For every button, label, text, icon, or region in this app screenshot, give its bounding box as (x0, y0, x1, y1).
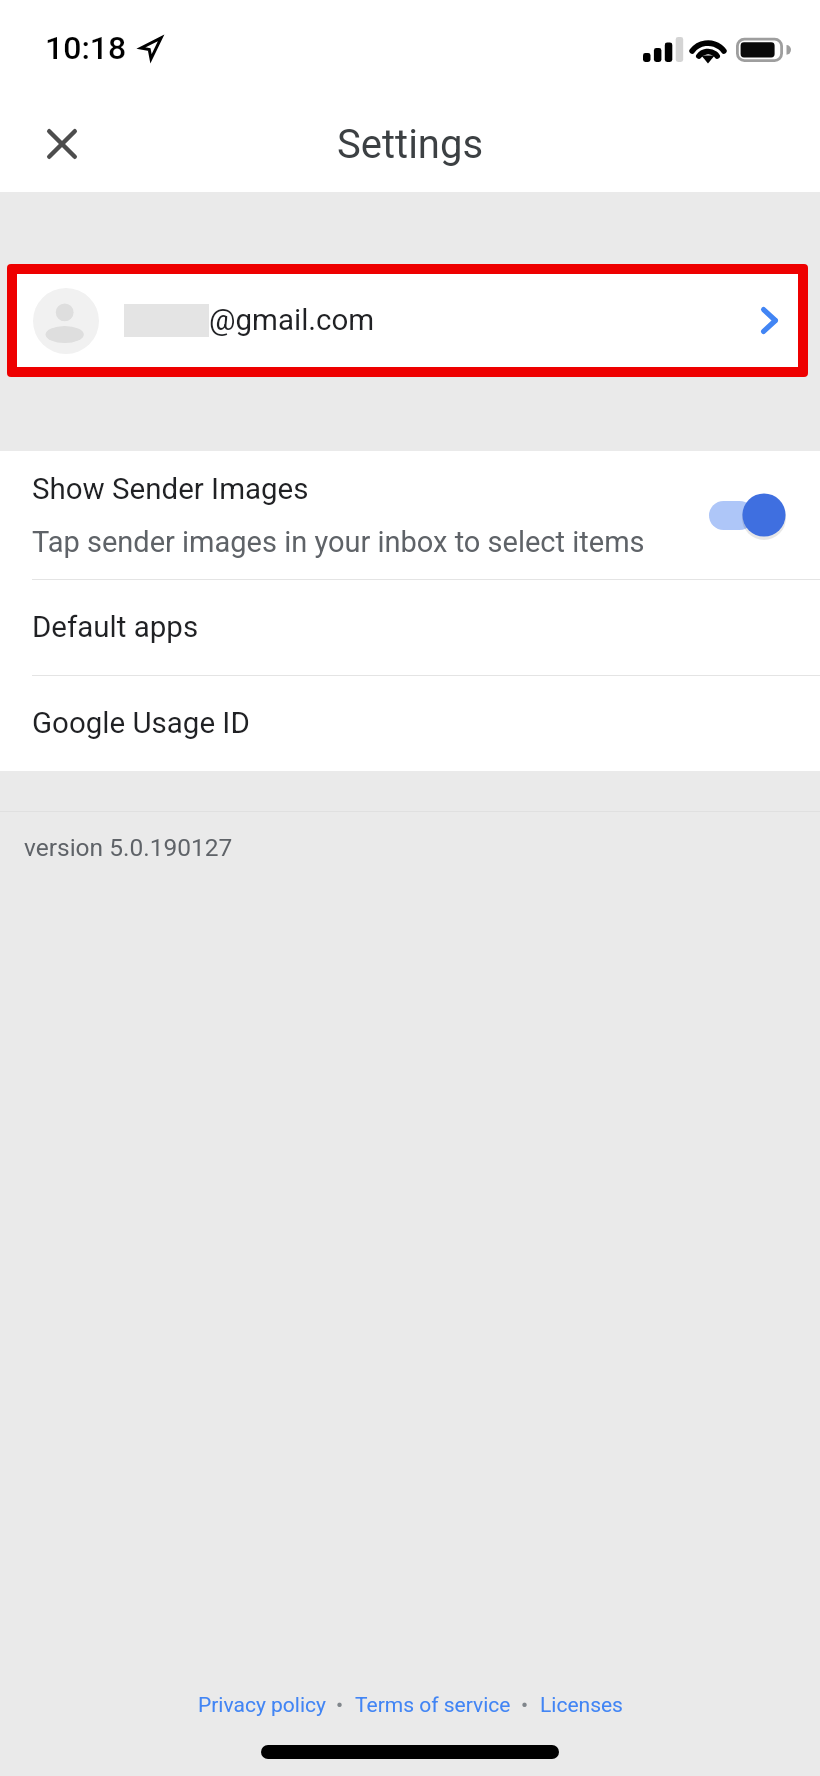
button[interactable]: Google Usage ID (0, 676, 820, 771)
staticText: Google Usage ID (32, 706, 250, 741)
staticText: • (336, 1693, 344, 1718)
button[interactable]: Close (24, 106, 100, 182)
button[interactable]: Default apps (0, 580, 820, 675)
staticText: Licenses (540, 1693, 623, 1718)
staticText: • (521, 1693, 529, 1718)
staticText: 10:18 (45, 29, 127, 67)
staticText: Settings (337, 121, 484, 168)
staticText: Tap sender images in your inbox to selec… (32, 525, 645, 559)
button[interactable]: Licenses (540, 1693, 623, 1718)
staticText: Privacy policy (198, 1693, 326, 1718)
staticText: version 5.0.190127 (24, 833, 233, 862)
button[interactable]: Terms of service (355, 1693, 511, 1718)
staticText: Show Sender Images (32, 472, 309, 507)
staticText: Default apps (32, 610, 199, 645)
button[interactable]: Show sender images toggle, on (709, 491, 786, 539)
staticText: @gmail.com (209, 303, 375, 338)
button[interactable]: Privacy policy (198, 1693, 326, 1718)
button[interactable]: @gmail.com (7, 264, 808, 377)
button[interactable]: Show Sender Images (0, 451, 820, 579)
staticText: Terms of service (355, 1693, 511, 1718)
